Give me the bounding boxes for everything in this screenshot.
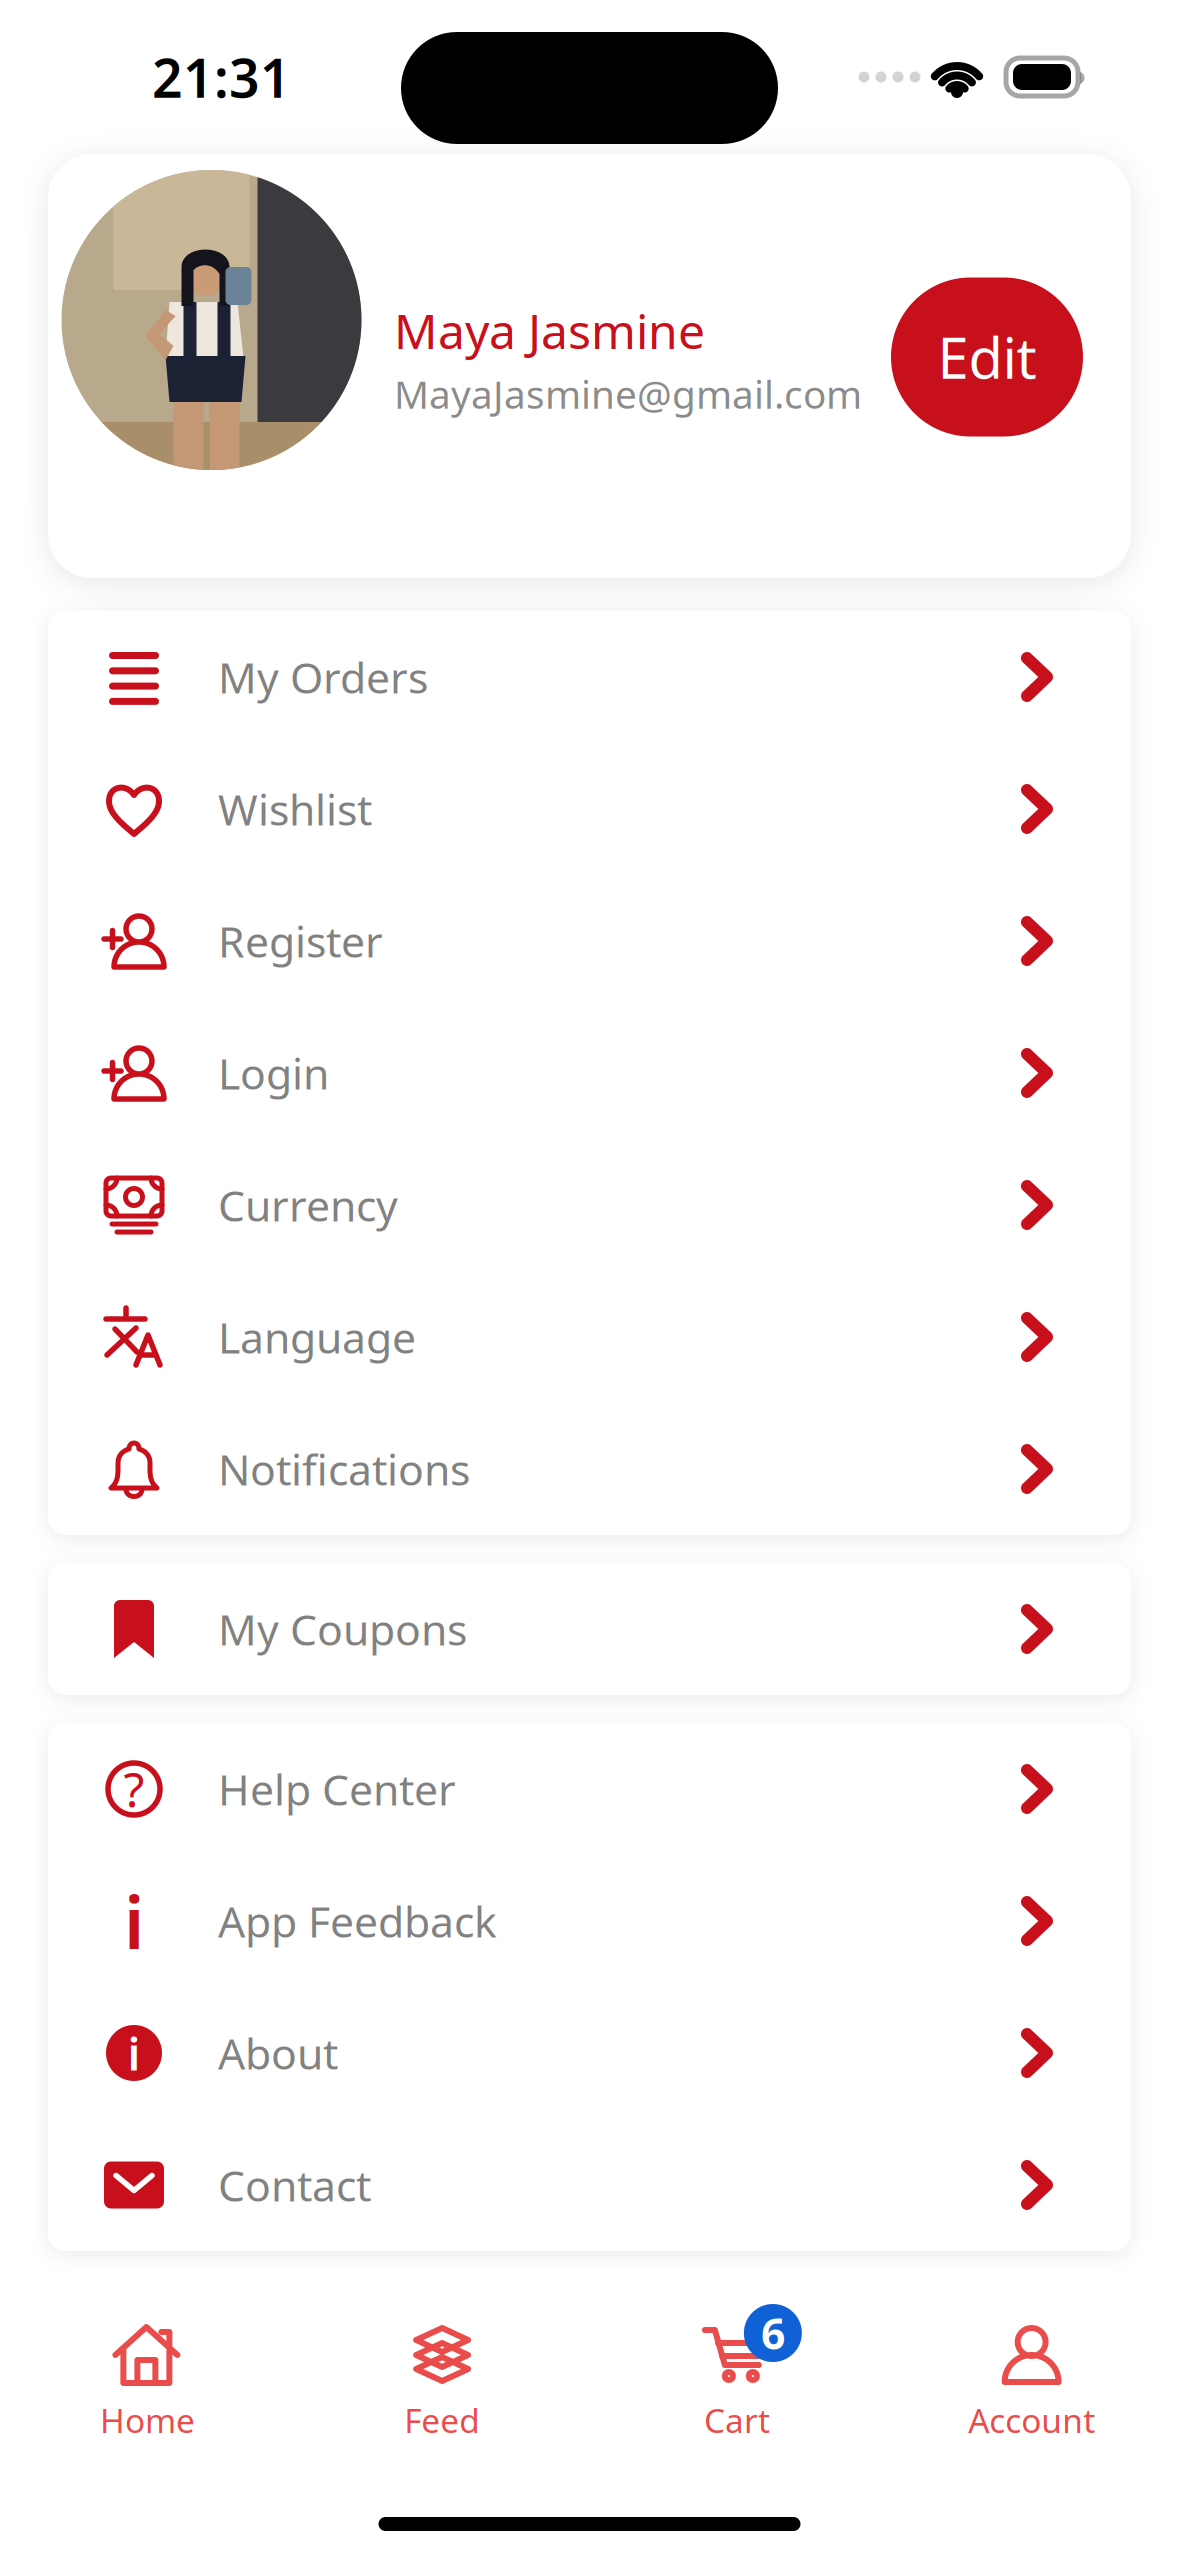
- staticText: Contact: [218, 2157, 371, 2213]
- staticText: Edit: [937, 320, 1036, 394]
- staticText: Register: [218, 913, 383, 969]
- button[interactable]: Currency: [48, 1139, 1131, 1271]
- button[interactable]: Home: [0, 2324, 295, 2442]
- button[interactable]: Contact: [48, 2119, 1131, 2251]
- staticText: App Feedback: [218, 1893, 497, 1949]
- button[interactable]: Notifications: [48, 1403, 1131, 1535]
- staticText: Cart: [704, 2398, 770, 2442]
- button[interactable]: Account: [884, 2324, 1179, 2442]
- staticText: Home: [100, 2398, 195, 2442]
- button[interactable]: Wishlist: [48, 743, 1131, 875]
- staticText: i: [127, 2023, 140, 2083]
- staticText: 21:31: [152, 42, 291, 112]
- button[interactable]: My Coupons: [48, 1563, 1131, 1695]
- button[interactable]: Language: [48, 1271, 1131, 1403]
- staticText: Language: [218, 1309, 416, 1365]
- button[interactable]: Feed: [295, 2324, 590, 2442]
- button[interactable]: i: [48, 1855, 1131, 1987]
- staticText: Maya Jasmine: [394, 298, 705, 362]
- staticText: Account: [968, 2398, 1095, 2442]
- staticText: Notifications: [218, 1441, 470, 1497]
- staticText: ?: [123, 1757, 144, 1821]
- staticText: MayaJasmine@gmail.com: [394, 368, 862, 419]
- button[interactable]: i: [48, 1987, 1131, 2119]
- staticText: 6: [761, 2305, 785, 2361]
- button[interactable]: Register: [48, 875, 1131, 1007]
- staticText: Feed: [404, 2398, 480, 2442]
- button[interactable]: My Orders: [48, 611, 1131, 743]
- staticText: About: [218, 2025, 338, 2081]
- staticText: Login: [218, 1045, 329, 1101]
- button[interactable]: ?: [48, 1723, 1131, 1855]
- button[interactable]: Login: [48, 1007, 1131, 1139]
- staticText: Currency: [218, 1177, 398, 1233]
- button[interactable]: 6: [589, 2324, 884, 2442]
- staticText: i: [124, 1873, 144, 1969]
- staticText: Wishlist: [218, 781, 372, 837]
- staticText: Help Center: [218, 1761, 456, 1817]
- staticText: My Orders: [218, 649, 428, 705]
- staticText: My Coupons: [218, 1601, 467, 1657]
- button[interactable]: Edit: [891, 277, 1083, 436]
